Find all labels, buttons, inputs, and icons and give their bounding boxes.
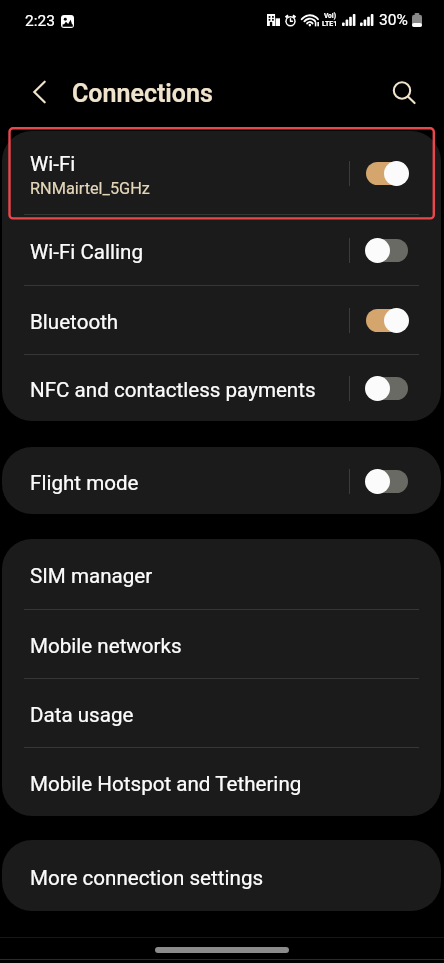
button[interactable]: Data usage [2, 679, 441, 747]
staticText: Flight mode [30, 471, 139, 495]
staticText: Wi-Fi [30, 152, 76, 176]
button[interactable]: Bluetooth [2, 286, 441, 354]
button[interactable]: More connection settings [2, 840, 441, 911]
button[interactable]: On [366, 160, 408, 186]
button[interactable]: Wi-Fi [2, 131, 441, 214]
staticText: LTE1 [322, 20, 338, 28]
staticText: More connection settings [30, 866, 264, 890]
staticText: Bluetooth [30, 310, 119, 334]
button[interactable]: NFC and contactless payments [2, 355, 441, 421]
staticText: Wi-Fi Calling [30, 240, 144, 264]
button[interactable]: Wi-Fi Calling [2, 215, 441, 285]
button[interactable]: Navigate up [21, 74, 57, 110]
staticText: 30% [379, 11, 408, 29]
staticText: NFC and contactless payments [30, 378, 316, 402]
staticText: VoI) [324, 12, 336, 20]
button[interactable]: SIM manager [2, 539, 441, 609]
staticText: RNMairtel_5GHz [30, 179, 150, 198]
button[interactable]: Mobile networks [2, 610, 441, 678]
staticText: Mobile networks [30, 634, 182, 658]
button[interactable]: On [366, 307, 408, 333]
staticText: SIM manager [30, 564, 153, 588]
button[interactable]: Off [366, 468, 408, 494]
button[interactable]: Off [366, 375, 408, 401]
staticText: Data usage [30, 703, 134, 727]
button[interactable]: Mobile Hotspot and Tethering [2, 748, 441, 816]
staticText: Mobile Hotspot and Tethering [30, 772, 302, 796]
button[interactable]: Flight mode [2, 447, 441, 514]
button[interactable]: Search [384, 74, 420, 110]
staticText: 2:23 [25, 12, 55, 30]
button[interactable]: Off [366, 237, 408, 263]
staticText: Connections [72, 79, 213, 108]
